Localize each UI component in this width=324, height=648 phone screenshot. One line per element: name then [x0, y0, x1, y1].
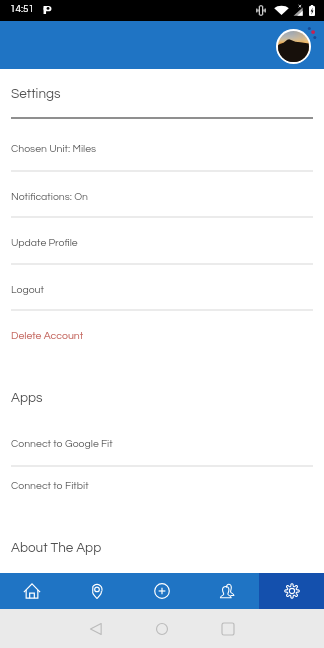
- button[interactable]: Recents: [195, 613, 261, 645]
- staticText: Connect to Fitbit: [11, 480, 89, 491]
- button[interactable]: Places: [64, 573, 129, 609]
- staticText: Chosen Unit: Miles: [11, 143, 97, 154]
- button[interactable]: Profile: [278, 31, 309, 62]
- staticText: Update Profile: [11, 237, 78, 248]
- staticText: About The App: [11, 541, 102, 555]
- staticText: Notifications: On: [11, 191, 89, 202]
- staticText: Logout: [11, 284, 44, 295]
- staticText: Delete Account: [11, 330, 84, 341]
- button[interactable]: Friends: [194, 573, 259, 609]
- button[interactable]: Settings: [259, 573, 324, 609]
- button[interactable]: Add: [129, 573, 194, 609]
- staticText: Apps: [11, 391, 43, 405]
- button[interactable]: Update Profile: [0, 218, 324, 264]
- button[interactable]: Delete Account: [0, 311, 324, 357]
- button[interactable]: Back: [63, 613, 129, 645]
- button[interactable]: Logout: [0, 265, 324, 311]
- staticText: 14:51: [10, 4, 35, 14]
- button[interactable]: Home: [129, 613, 195, 645]
- button[interactable]: Home: [0, 573, 64, 609]
- staticText: Connect to Google Fit: [11, 438, 113, 449]
- button[interactable]: Connect to Google Fit: [0, 419, 324, 466]
- staticText: Settings: [11, 87, 61, 101]
- button[interactable]: Connect to Fitbit: [0, 461, 324, 507]
- button[interactable]: Chosen Unit: Miles: [0, 124, 324, 171]
- button[interactable]: Notifications: On: [0, 172, 324, 219]
